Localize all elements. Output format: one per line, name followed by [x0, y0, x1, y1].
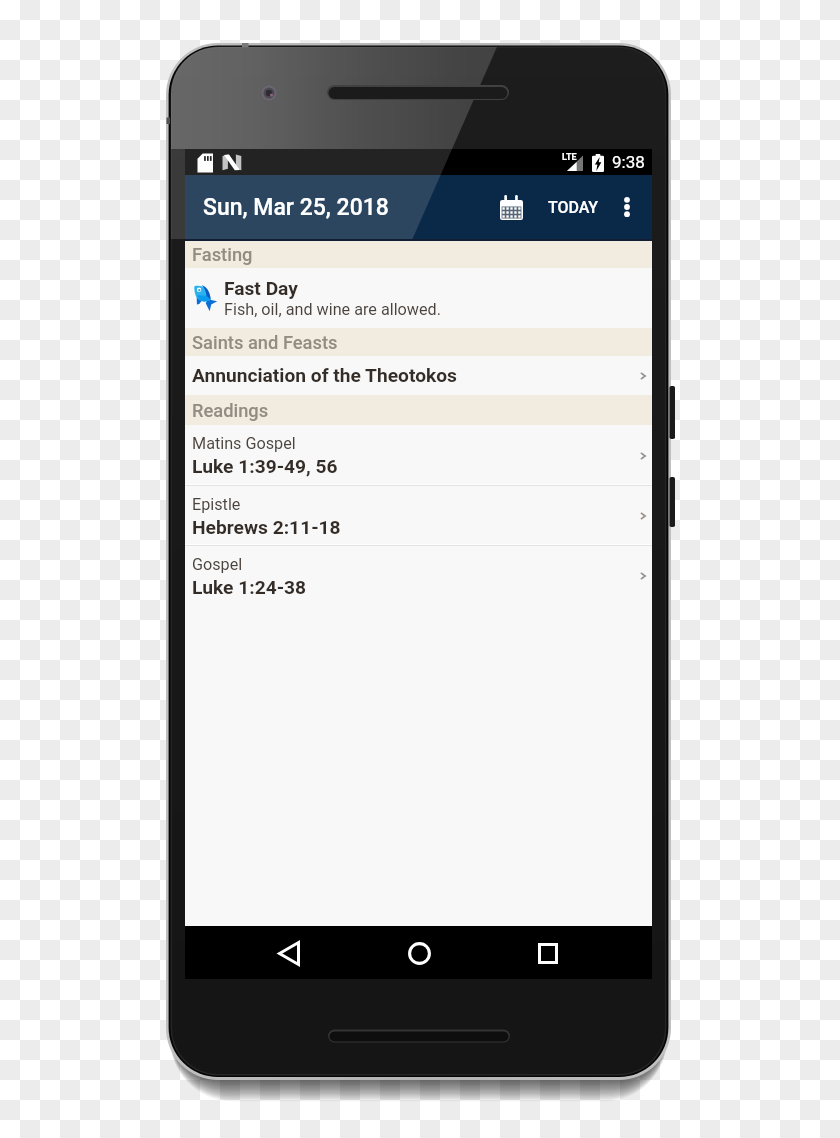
staticText: Matins Gospel	[192, 434, 296, 453]
staticText: Readings	[192, 400, 269, 421]
button[interactable]: Matins Gospel	[185, 425, 652, 486]
button[interactable]: Annunciation of the Theotokos	[185, 356, 652, 395]
staticText: 9:38	[612, 152, 645, 172]
staticText: Epistle	[192, 495, 241, 514]
staticText: Fish, oil, and wine are allowed.	[224, 300, 441, 319]
button[interactable]: Pick date	[488, 184, 534, 230]
staticText: Saints and Feasts	[192, 332, 338, 353]
staticText: LTE	[562, 152, 577, 163]
staticText: Luke 1:39-49, 56	[192, 455, 338, 478]
staticText: Annunciation of the Theotokos	[192, 364, 457, 387]
staticText: Luke 1:24-38	[192, 576, 307, 599]
button[interactable]: Epistle	[185, 486, 652, 546]
button[interactable]: TODAY	[533, 185, 614, 230]
staticText: TODAY	[548, 198, 599, 217]
staticText: Fast Day	[224, 277, 298, 300]
button[interactable]: Gospel	[185, 546, 652, 606]
staticText: Hebrews 2:11-18	[192, 516, 341, 539]
button[interactable]: More options	[605, 185, 649, 229]
button[interactable]: Back	[264, 928, 314, 978]
staticText: Gospel	[192, 555, 243, 574]
staticText: Sun, Mar 25, 2018	[203, 194, 389, 221]
button[interactable]: Fast Day	[185, 268, 652, 328]
staticText: Fasting	[192, 244, 253, 265]
button[interactable]: Recent apps	[523, 928, 573, 978]
button[interactable]: Home	[394, 928, 444, 978]
